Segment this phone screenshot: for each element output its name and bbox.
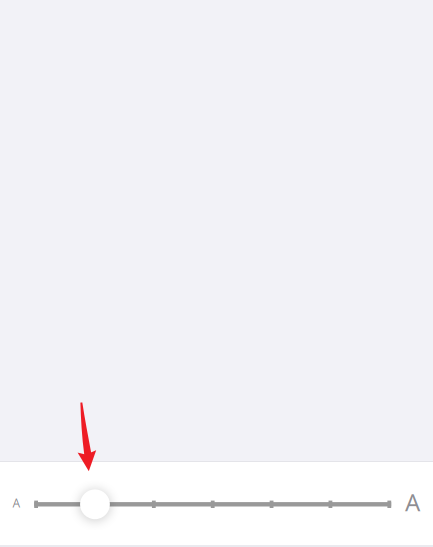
button[interactable]: Text size [0,462,433,545]
staticText: A [405,486,420,518]
staticText: A [13,495,21,511]
